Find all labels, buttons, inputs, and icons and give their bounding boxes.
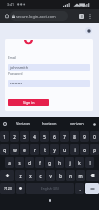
staticText: 3:41: [7, 2, 15, 7]
button[interactable]: v: [46, 170, 55, 181]
staticText: h: [58, 160, 61, 166]
button[interactable]: 8: [70, 131, 79, 142]
button[interactable]: 5: [40, 131, 49, 142]
button[interactable]: secure.login-acct.com: [10, 11, 68, 21]
button[interactable]: Emoji: [16, 183, 25, 194]
button[interactable]: l: [85, 157, 94, 168]
button[interactable]: r: [30, 144, 39, 155]
staticText: English (US): [41, 187, 59, 191]
staticText: q: [3, 147, 6, 153]
button[interactable]: a: [5, 157, 14, 168]
button[interactable]: Keyboard settings: [2, 121, 8, 127]
staticText: Verizon: [16, 121, 31, 126]
button[interactable]: z: [15, 170, 25, 181]
button[interactable]: 1: [0, 131, 9, 142]
button[interactable]: Verizon: [10, 117, 36, 130]
button[interactable]: Home: [2, 9, 11, 23]
staticText: u: [63, 147, 66, 153]
button[interactable]: p: [90, 144, 99, 155]
button[interactable]: johnsmith: [8, 64, 90, 71]
button[interactable]: y: [50, 144, 59, 155]
staticText: x: [29, 173, 32, 179]
staticText: s: [18, 160, 21, 166]
button[interactable]: m: [76, 170, 85, 181]
button[interactable]: Language: [85, 27, 92, 34]
staticText: 2: [13, 134, 16, 140]
button[interactable]: s: [15, 157, 24, 168]
staticText: l: [89, 160, 91, 166]
button[interactable]: Space: [26, 183, 74, 194]
button[interactable]: o: [80, 144, 89, 155]
staticText: m: [78, 173, 83, 179]
button[interactable]: 9: [80, 131, 89, 142]
button[interactable]: Shift: [0, 170, 14, 181]
staticText: g: [48, 160, 51, 166]
staticText: v: [49, 173, 52, 179]
staticText: n: [69, 173, 72, 179]
staticText: Sign in: [23, 100, 35, 105]
button[interactable]: Backspace: [86, 170, 99, 181]
button[interactable]: .: [75, 183, 84, 194]
button[interactable]: x: [26, 170, 35, 181]
staticText: b: [59, 173, 62, 179]
staticText: secure.login-acct.com: [16, 14, 56, 19]
staticText: Password: [8, 72, 23, 76]
button[interactable]: Sign in: [8, 99, 49, 106]
staticText: ?123: [4, 186, 12, 191]
button[interactable]: 2: [10, 131, 19, 142]
button[interactable]: 4: [30, 131, 39, 142]
button[interactable]: k: [75, 157, 84, 168]
staticText: y: [53, 147, 56, 153]
button[interactable]: w: [10, 144, 19, 155]
staticText: 1: [3, 134, 6, 140]
button[interactable]: g: [45, 157, 54, 168]
button[interactable]: j: [65, 157, 74, 168]
button[interactable]: 7: [60, 131, 69, 142]
button[interactable]: q: [0, 144, 9, 155]
staticText: 0: [93, 134, 96, 140]
button[interactable]: f: [35, 157, 44, 168]
button[interactable]: b: [56, 170, 65, 181]
button[interactable]: ?123: [0, 183, 15, 194]
staticText: ••••••••: [10, 81, 23, 86]
button[interactable]: e: [20, 144, 29, 155]
staticText: a: [8, 160, 11, 166]
staticText: 7: [63, 134, 66, 140]
staticText: j: [69, 160, 71, 166]
button[interactable]: Voice input: [91, 121, 97, 127]
button[interactable]: Enter: [85, 183, 99, 194]
staticText: johnsmith: [10, 65, 29, 70]
button[interactable]: 3: [20, 131, 29, 142]
button[interactable]: More options: [86, 9, 94, 23]
button[interactable]: 0: [90, 131, 99, 142]
staticText: z: [19, 173, 22, 179]
staticText: o: [83, 147, 86, 153]
staticText: 9: [83, 134, 86, 140]
button[interactable]: u: [60, 144, 69, 155]
staticText: e: [23, 147, 26, 153]
staticText: Email: [8, 56, 17, 60]
button[interactable]: d: [25, 157, 34, 168]
staticText: .: [79, 186, 81, 192]
staticText: verizon: [70, 121, 84, 126]
staticText: t: [44, 147, 46, 153]
button[interactable]: c: [36, 170, 45, 181]
staticText: 5: [43, 134, 46, 140]
button[interactable]: i: [70, 144, 79, 155]
button[interactable]: h: [55, 157, 64, 168]
staticText: 3: [23, 134, 26, 140]
button[interactable]: n: [66, 170, 75, 181]
button[interactable]: verizon: [63, 117, 90, 130]
staticText: 6: [53, 134, 56, 140]
button[interactable]: ••••••••: [8, 80, 90, 87]
button[interactable]: t: [40, 144, 49, 155]
staticText: horizon: [42, 121, 57, 126]
button[interactable]: 6: [50, 131, 59, 142]
button[interactable]: Tabs: [77, 9, 86, 23]
staticText: k: [78, 160, 81, 166]
staticText: p: [93, 147, 96, 153]
staticText: f: [39, 160, 41, 166]
button[interactable]: horizon: [36, 117, 63, 130]
staticText: c: [39, 173, 42, 179]
staticText: d: [28, 160, 31, 166]
